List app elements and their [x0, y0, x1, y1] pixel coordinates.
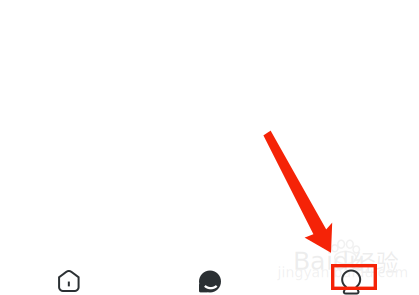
- staticText: Baidu: [293, 246, 365, 276]
- button[interactable]: Home: [0, 265, 140, 295]
- button[interactable]: Messages: [140, 265, 279, 295]
- staticText: jingyan.baidu.com: [277, 264, 408, 281]
- staticText: 经验: [353, 245, 399, 277]
- button[interactable]: Profile: [279, 265, 419, 295]
